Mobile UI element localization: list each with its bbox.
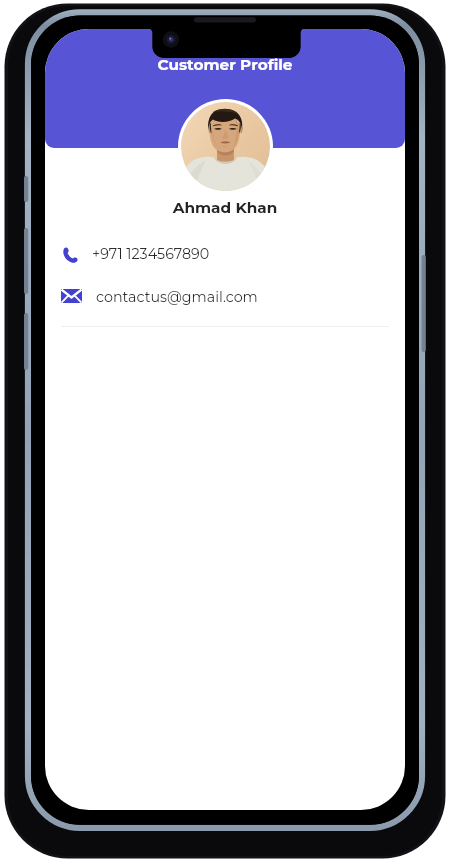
button[interactable]: contactus@gmail.com <box>45 282 405 313</box>
button[interactable]: Customer Profile <box>45 55 405 74</box>
staticText: contactus@gmail.com <box>96 288 258 305</box>
staticText: Ahmad Khan <box>45 198 405 217</box>
button[interactable]: +971 1234567890 <box>45 240 405 271</box>
staticText: +971 1234567890 <box>92 245 210 262</box>
button[interactable]: Profile photo <box>178 99 273 194</box>
staticText: Customer Profile <box>45 55 405 74</box>
